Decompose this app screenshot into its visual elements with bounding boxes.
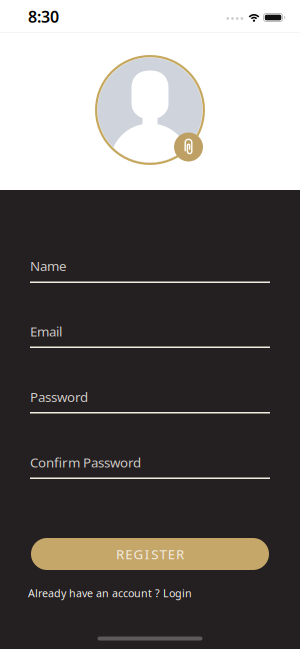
staticText: REGISTER <box>116 545 184 563</box>
staticText: Email <box>30 322 62 340</box>
textField[interactable]: Email <box>30 320 270 350</box>
staticText: Login <box>163 586 192 600</box>
staticText: Already have an account ? <box>28 586 163 600</box>
staticText: 8:30 <box>28 6 59 27</box>
staticText: Confirm Password <box>30 451 226 481</box>
textField[interactable]: Password <box>30 386 270 416</box>
textField[interactable]: Name <box>30 255 270 285</box>
staticText: Email <box>30 320 89 350</box>
staticText: Name <box>30 257 67 275</box>
button[interactable]: Add profile photo <box>95 55 205 165</box>
button[interactable]: Login <box>163 586 192 600</box>
button[interactable]: REGISTER <box>31 538 269 570</box>
staticText: Password <box>30 386 134 416</box>
staticText: Name <box>30 255 94 285</box>
textField[interactable]: Confirm Password <box>30 451 270 481</box>
staticText: Confirm Password <box>30 453 141 471</box>
staticText: Password <box>30 388 88 406</box>
